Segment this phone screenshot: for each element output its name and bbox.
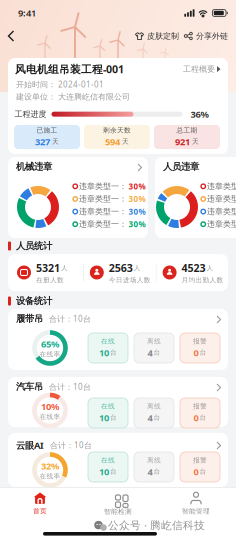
button[interactable]: 分享外链 <box>184 31 228 41</box>
staticText: 36% <box>190 108 208 120</box>
staticText: 智能管理 <box>182 507 210 515</box>
staticText: 报警 <box>193 402 207 410</box>
button[interactable]: 查看云眼AI详情 <box>216 442 223 451</box>
staticText: 合计：10台 <box>49 313 91 324</box>
button[interactable]: 云眼AI <box>16 439 92 451</box>
staticText: 台 <box>199 413 206 422</box>
staticText: 皮肤定制 <box>147 31 179 41</box>
button[interactable]: 履带吊 <box>16 313 91 324</box>
staticText: 台 <box>153 467 160 476</box>
staticText: 327 <box>35 135 50 148</box>
staticText: 4 <box>147 465 152 478</box>
staticText: 违章类型一： <box>79 219 127 229</box>
staticText: 0 <box>193 411 198 424</box>
button[interactable]: 查看汽车吊详情 <box>216 384 223 393</box>
staticText: 报警 <box>193 456 207 464</box>
staticText: 履带吊 <box>16 313 43 324</box>
staticText: 违章类型一： <box>79 207 127 216</box>
staticText: 违章类型一： <box>207 207 236 216</box>
staticText: 台 <box>110 467 117 476</box>
button[interactable]: 智能管理 <box>157 492 235 515</box>
staticText: 云眼AI <box>16 439 44 451</box>
staticText: 2563 <box>109 261 133 275</box>
button[interactable]: 工程概要 <box>183 64 221 74</box>
staticText: 人员违章 <box>163 161 199 172</box>
staticText: 台 <box>153 348 160 357</box>
staticText: 10 <box>99 411 109 424</box>
button[interactable]: 机械违章 <box>8 157 148 238</box>
staticText: 在线率 <box>39 472 60 480</box>
staticText: 在线率 <box>39 413 60 421</box>
staticText: 公众号 · 腾屹信科技 <box>108 518 205 532</box>
staticText: 32% <box>41 460 59 472</box>
staticText: 人 <box>207 264 214 272</box>
staticText: 工程概要 <box>183 64 215 74</box>
staticText: 合计：10台 <box>50 440 92 450</box>
staticText: 违章类型一： <box>207 181 236 191</box>
staticText: 违章类型一： <box>79 194 127 204</box>
staticText: 汽车吊 <box>16 381 43 392</box>
staticText: 65% <box>41 338 59 350</box>
staticText: 已施工 <box>36 126 57 134</box>
staticText: 违章类型一： <box>207 194 236 204</box>
staticText: 台 <box>199 348 206 357</box>
staticText: 离线 <box>147 456 161 464</box>
staticText: 30% <box>128 181 145 192</box>
staticText: 违章类型一： <box>207 219 236 229</box>
staticText: 天 <box>122 137 129 146</box>
staticText: 人 <box>134 264 141 272</box>
staticText: 台 <box>110 348 117 357</box>
button[interactable]: 皮肤定制 <box>135 31 179 41</box>
button[interactable]: 查看履带吊详情 <box>216 316 223 325</box>
staticText: 首页 <box>33 507 47 515</box>
staticText: 违章类型一： <box>79 181 127 191</box>
staticText: 5321 <box>36 261 60 275</box>
staticText: 建设单位： 大连腾屹信有限公司 <box>16 92 130 102</box>
staticText: 10 <box>99 465 109 478</box>
staticText: 台 <box>110 413 117 422</box>
staticText: 设备统计 <box>16 295 52 307</box>
staticText: 报警 <box>193 337 207 345</box>
staticText: 分享外链 <box>196 31 228 41</box>
staticText: 921 <box>175 135 190 148</box>
staticText: 离线 <box>147 337 161 345</box>
staticText: 4 <box>147 411 152 424</box>
staticText: 机械违章 <box>16 161 52 172</box>
staticText: 天 <box>52 137 59 146</box>
staticText: 智能检测 <box>104 507 132 516</box>
staticText: 开始时间： 2024-01-01 <box>16 79 104 90</box>
button[interactable]: 汽车吊 <box>16 381 91 392</box>
staticText: 0 <box>193 346 198 359</box>
button[interactable]: 智能检测 <box>79 492 157 516</box>
staticText: 台 <box>153 413 160 422</box>
staticText: 合计：10台 <box>49 381 91 392</box>
staticText: 台 <box>199 467 206 476</box>
staticText: 在册人数 <box>36 276 64 284</box>
staticText: 在线 <box>101 402 115 410</box>
staticText: 4523 <box>182 261 206 275</box>
staticText: 今日进场人数 <box>109 276 151 284</box>
button[interactable]: 首页 <box>1 492 79 515</box>
staticText: 人员统计 <box>16 240 52 252</box>
staticText: 30% <box>128 194 145 204</box>
staticText: 离线 <box>147 402 161 410</box>
staticText: 总工期 <box>176 126 197 134</box>
button[interactable]: 人员违章 <box>155 157 236 238</box>
staticText: 0 <box>193 465 198 478</box>
staticText: 风电机组吊装工程-001 <box>15 62 124 76</box>
staticText: 月均出勤人数 <box>182 276 224 284</box>
staticText: 30% <box>128 206 145 217</box>
staticText: 工程进度 <box>14 109 46 119</box>
staticText: 人 <box>61 264 68 272</box>
staticText: 10% <box>41 400 59 413</box>
staticText: 在线率 <box>39 350 60 358</box>
staticText: 剩余天数 <box>103 126 131 134</box>
staticText: 在线 <box>101 456 115 464</box>
staticText: 天 <box>192 137 199 146</box>
button[interactable]: 返回 <box>0 31 15 41</box>
staticText: 9:41 <box>18 7 36 19</box>
staticText: 594 <box>105 135 120 148</box>
staticText: 在线 <box>101 337 115 345</box>
staticText: 4 <box>147 346 152 359</box>
staticText: 10 <box>99 346 109 359</box>
